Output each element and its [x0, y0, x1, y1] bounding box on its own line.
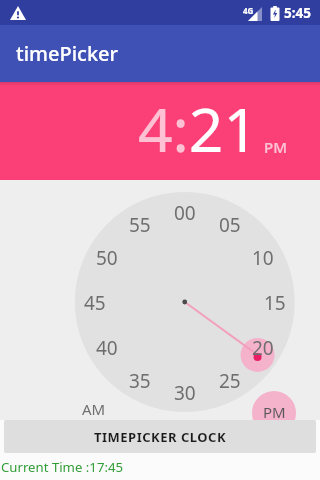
- staticText: 4G: [243, 5, 254, 16]
- staticText: 30: [174, 380, 196, 404]
- staticText: 20: [252, 335, 274, 359]
- staticText: Current Time :17:45: [1, 458, 124, 476]
- staticText: 35: [129, 368, 151, 392]
- button[interactable]: TIMEPICKER CLOCK: [4, 420, 316, 453]
- staticText: 00: [174, 200, 196, 224]
- staticText: timePicker: [16, 40, 119, 67]
- staticText: TIMEPICKER CLOCK: [94, 428, 227, 446]
- staticText: 25: [219, 368, 241, 392]
- staticText: PM: [264, 137, 287, 157]
- staticText: 45: [84, 290, 106, 314]
- staticText: 15: [264, 290, 286, 314]
- staticText: 5:45: [284, 4, 311, 22]
- staticText: 4:21: [138, 87, 259, 169]
- staticText: 05: [219, 212, 241, 236]
- staticText: 50: [96, 245, 118, 269]
- button[interactable]: AM: [72, 397, 116, 420]
- staticText: 10: [252, 245, 274, 269]
- staticText: 55: [129, 212, 151, 236]
- staticText: AM: [82, 399, 106, 419]
- button[interactable]: PM: [252, 400, 296, 420]
- staticText: PM: [263, 402, 286, 420]
- staticText: 40: [96, 335, 118, 359]
